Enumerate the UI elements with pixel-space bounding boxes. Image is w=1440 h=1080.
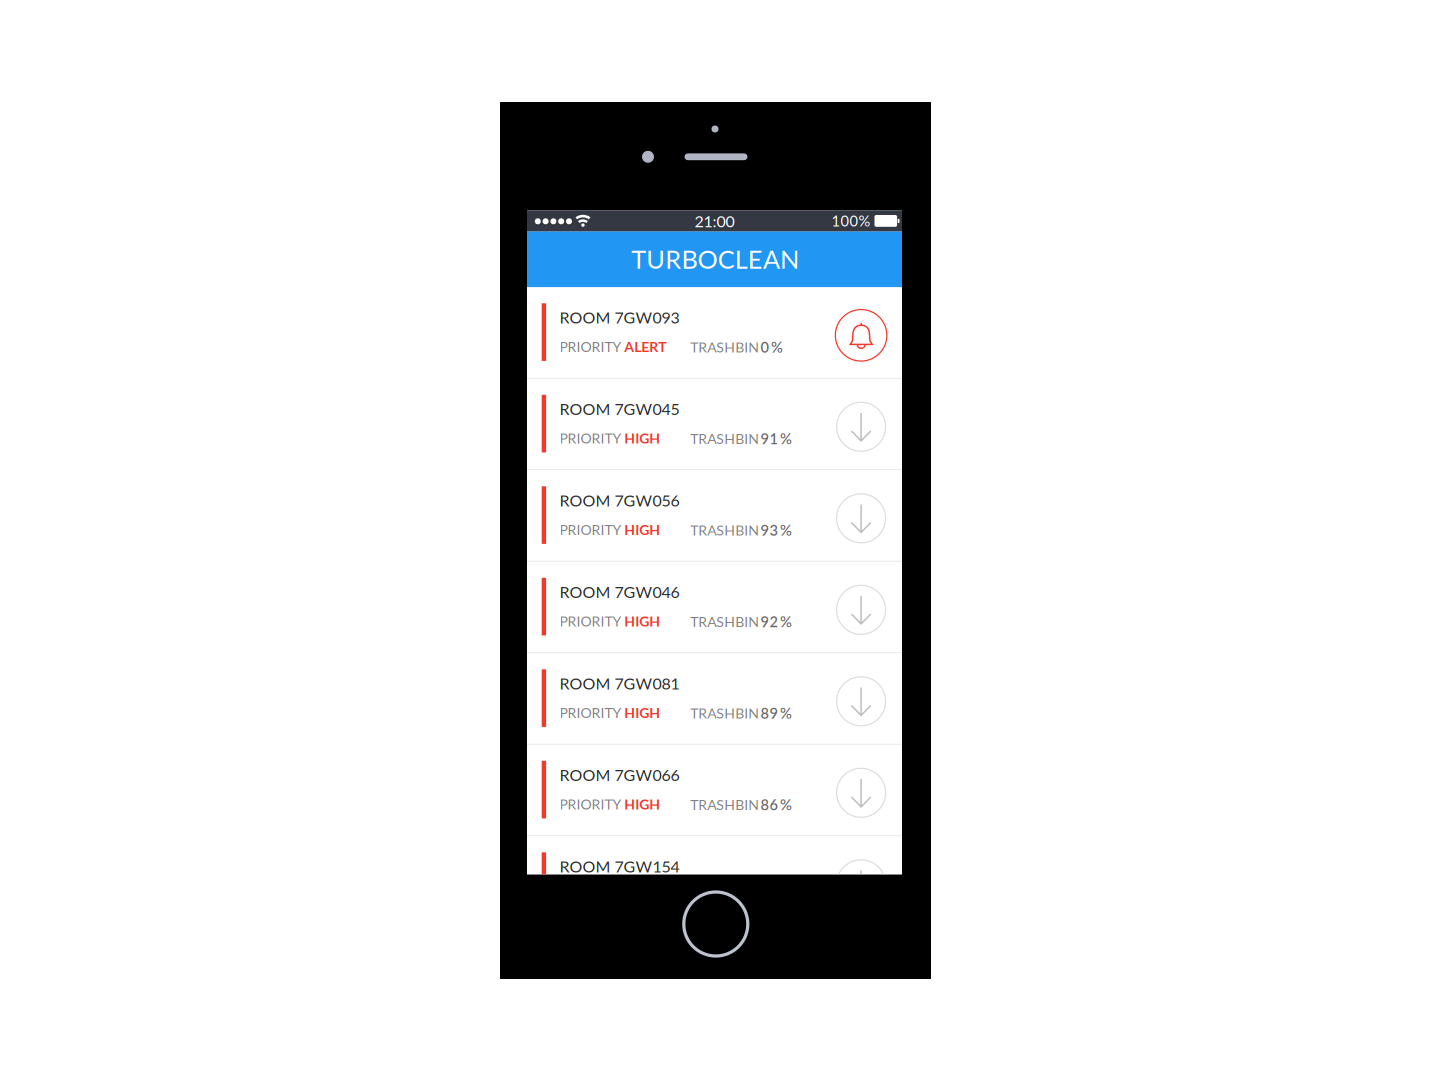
staticText: ALERT	[624, 338, 666, 355]
staticText: E	[748, 244, 763, 274]
staticText: %	[780, 430, 792, 447]
staticText: ROOM 7GW081	[559, 674, 679, 693]
staticText: TRASHBIN	[690, 339, 759, 355]
staticText: U	[646, 244, 665, 274]
button[interactable]: ROOM 7GW066	[527, 745, 902, 835]
staticText: %	[780, 704, 792, 722]
staticText: ROOM 7GW066	[559, 765, 679, 784]
staticText: R	[665, 244, 681, 274]
staticText: B	[681, 244, 697, 274]
button[interactable]: Alert ROOM 7GW093	[836, 310, 887, 361]
staticText: ROOM 7GW056	[559, 491, 679, 510]
staticText: %	[780, 613, 792, 630]
staticText: ROOM 7GW046	[559, 582, 679, 601]
button[interactable]: Assign ROOM 7GW046	[836, 584, 887, 635]
button[interactable]: Assign ROOM 7GW066	[836, 767, 887, 818]
staticText: L	[735, 244, 748, 274]
staticText: PRIORITY	[560, 338, 622, 355]
staticText: T	[631, 244, 646, 274]
staticText: TRASHBIN	[690, 705, 759, 721]
button[interactable]: ROOM 7GW045	[527, 379, 902, 469]
staticText: ROOM 7GW154	[559, 857, 679, 876]
staticText: 92	[760, 613, 778, 630]
staticText: TRASHBIN	[690, 613, 759, 630]
staticText: HIGH	[624, 613, 660, 630]
button[interactable]: ROOM 7GW154	[527, 836, 902, 927]
button[interactable]: Assign ROOM 7GW056	[836, 493, 887, 544]
staticText: %	[780, 521, 792, 539]
staticText: PRIORITY	[560, 704, 622, 721]
staticText: ROOM 7GW045	[559, 399, 679, 418]
staticText: HIGH	[624, 521, 660, 538]
staticText: 91	[760, 430, 778, 447]
button[interactable]: Assign ROOM 7GW081	[836, 676, 887, 727]
staticText: C	[718, 244, 735, 274]
staticText: TRASHBIN	[690, 796, 759, 813]
staticText: ROOM 7GW093	[559, 308, 679, 327]
staticText: PRIORITY	[560, 430, 622, 447]
button[interactable]: ROOM 7GW081	[527, 653, 902, 744]
staticText: %	[780, 796, 792, 813]
staticText: TRASHBIN	[690, 522, 759, 538]
staticText: 93	[760, 521, 778, 539]
staticText: PRIORITY	[560, 521, 622, 538]
button[interactable]: ROOM 7GW046	[527, 562, 902, 652]
staticText: O	[697, 244, 717, 274]
button[interactable]: Home	[684, 892, 748, 956]
staticText: 0	[760, 338, 769, 356]
staticText: 86	[760, 796, 778, 813]
staticText: 89	[760, 704, 778, 722]
staticText: HIGH	[624, 430, 660, 447]
staticText: 100%	[831, 212, 870, 230]
button[interactable]: Assign ROOM 7GW154	[836, 859, 887, 910]
button[interactable]: ROOM 7GW093	[527, 287, 902, 378]
staticText: N	[780, 244, 799, 274]
button[interactable]: Assign ROOM 7GW045	[836, 401, 887, 452]
staticText: TRASHBIN	[690, 430, 759, 447]
staticText: A	[763, 244, 780, 274]
staticText: 21:00	[694, 211, 734, 230]
staticText: PRIORITY	[560, 796, 622, 813]
staticText: %	[771, 338, 783, 356]
staticText: PRIORITY	[560, 613, 622, 630]
staticText: HIGH	[624, 704, 660, 721]
staticText: TRASHBIN	[690, 888, 759, 904]
button[interactable]: ROOM 7GW056	[527, 470, 902, 561]
staticText: HIGH	[624, 796, 660, 813]
